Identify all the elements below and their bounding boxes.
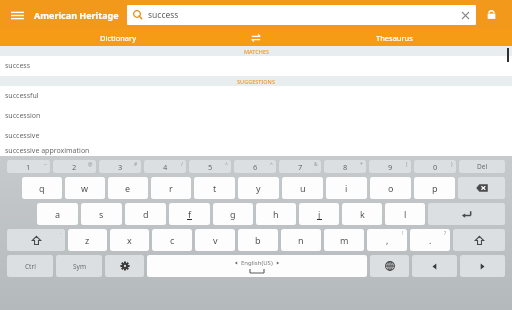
button[interactable]: Swap dictionary and thesaurus — [236, 29, 276, 46]
button[interactable]: g — [213, 203, 253, 225]
staticText: American Heritage — [34, 9, 119, 21]
staticText: success — [5, 61, 31, 71]
button[interactable]: . — [410, 229, 450, 251]
staticText: * — [360, 161, 363, 168]
button[interactable]: 0 — [414, 160, 456, 173]
staticText: v — [213, 234, 218, 246]
button[interactable]: Dictionary — [0, 29, 236, 46]
button[interactable]: Space — [147, 255, 367, 277]
staticText: @ — [88, 161, 93, 168]
staticText: . — [429, 234, 432, 246]
staticText: 7 — [298, 162, 303, 172]
button[interactable]: Lock — [476, 0, 506, 29]
staticText: success — [148, 9, 179, 21]
staticText: MATCHES — [244, 48, 269, 55]
staticText: g — [230, 208, 236, 220]
staticText: successive approximation — [5, 146, 90, 156]
button[interactable]: t — [194, 177, 235, 199]
button[interactable]: successive approximation — [0, 146, 512, 156]
button[interactable]: n — [281, 229, 321, 251]
button[interactable]: success — [127, 5, 476, 25]
button[interactable]: z — [68, 229, 107, 251]
button[interactable]: 1 — [7, 160, 50, 173]
button[interactable]: s — [81, 203, 122, 225]
button[interactable]: 9 — [369, 160, 411, 173]
button[interactable]: Menu — [6, 4, 28, 26]
staticText: h — [273, 208, 279, 220]
staticText: o — [388, 182, 394, 194]
button[interactable]: Cursor right — [460, 255, 505, 277]
staticText: d — [143, 208, 149, 220]
button[interactable]: Del — [459, 160, 505, 173]
staticText: z — [85, 234, 90, 246]
staticText: succession — [5, 111, 41, 121]
staticText: 3 — [118, 162, 123, 172]
button[interactable]: 4 — [144, 160, 186, 173]
button[interactable]: l — [385, 203, 425, 225]
staticText: t — [213, 182, 217, 194]
button[interactable]: 5 — [189, 160, 231, 173]
staticText: Ctrl — [25, 262, 36, 271]
button[interactable]: e — [108, 177, 148, 199]
button[interactable]: Shift — [7, 229, 65, 251]
button[interactable]: w — [65, 177, 105, 199]
staticText: l — [404, 208, 407, 220]
staticText: k — [360, 208, 365, 220]
button[interactable]: v — [195, 229, 235, 251]
button[interactable]: i — [326, 177, 367, 199]
button[interactable]: f — [169, 203, 210, 225]
button[interactable]: 6 — [234, 160, 276, 173]
button[interactable]: Thesaurus — [276, 29, 512, 46]
button[interactable]: Ctrl — [7, 255, 53, 277]
button[interactable]: y — [238, 177, 279, 199]
staticText: 0 — [433, 162, 438, 172]
button[interactable]: x — [110, 229, 149, 251]
button[interactable]: u — [282, 177, 323, 199]
staticText: b — [255, 234, 261, 246]
staticText: ( — [406, 161, 408, 168]
button[interactable]: o — [370, 177, 411, 199]
staticText: s — [99, 208, 104, 220]
button[interactable]: 2 — [53, 160, 96, 173]
button[interactable]: succession — [0, 106, 512, 126]
button[interactable]: p — [414, 177, 455, 199]
staticText: ^ — [270, 161, 273, 168]
button[interactable]: Backspace — [458, 177, 505, 199]
button[interactable]: b — [238, 229, 278, 251]
button[interactable]: successive — [0, 126, 512, 146]
staticText: f — [188, 208, 192, 220]
staticText: m — [340, 234, 349, 246]
staticText: Thesaurus — [376, 33, 413, 43]
button[interactable]: 8 — [324, 160, 366, 173]
staticText: ^ — [225, 161, 228, 168]
button[interactable]: q — [22, 177, 62, 199]
staticText: , — [386, 234, 389, 246]
button[interactable]: Settings — [105, 255, 144, 277]
button[interactable]: c — [152, 229, 192, 251]
staticText: 1 — [26, 162, 31, 172]
button[interactable]: successful — [0, 86, 512, 106]
button[interactable]: Enter — [428, 203, 505, 225]
button[interactable]: 7 — [279, 160, 321, 173]
button[interactable]: d — [125, 203, 166, 225]
button[interactable]: , — [367, 229, 407, 251]
button[interactable]: success — [0, 56, 512, 76]
button[interactable]: j — [299, 203, 339, 225]
button[interactable]: h — [256, 203, 296, 225]
button[interactable]: k — [342, 203, 382, 225]
staticText: Sym — [73, 262, 86, 271]
button[interactable]: Shift — [453, 229, 505, 251]
staticText: ) — [451, 161, 453, 168]
button[interactable]: Change language — [370, 255, 409, 277]
button[interactable]: m — [324, 229, 364, 251]
button[interactable]: a — [37, 203, 78, 225]
staticText: j — [318, 208, 321, 220]
staticText: ~ — [44, 161, 47, 168]
button[interactable]: Clear — [458, 8, 472, 22]
button[interactable]: r — [151, 177, 191, 199]
button[interactable]: 3 — [99, 160, 141, 173]
staticText: n — [298, 234, 304, 246]
button[interactable]: Sym — [56, 255, 102, 277]
staticText: ! — [402, 230, 404, 237]
button[interactable]: Cursor left — [412, 255, 457, 277]
